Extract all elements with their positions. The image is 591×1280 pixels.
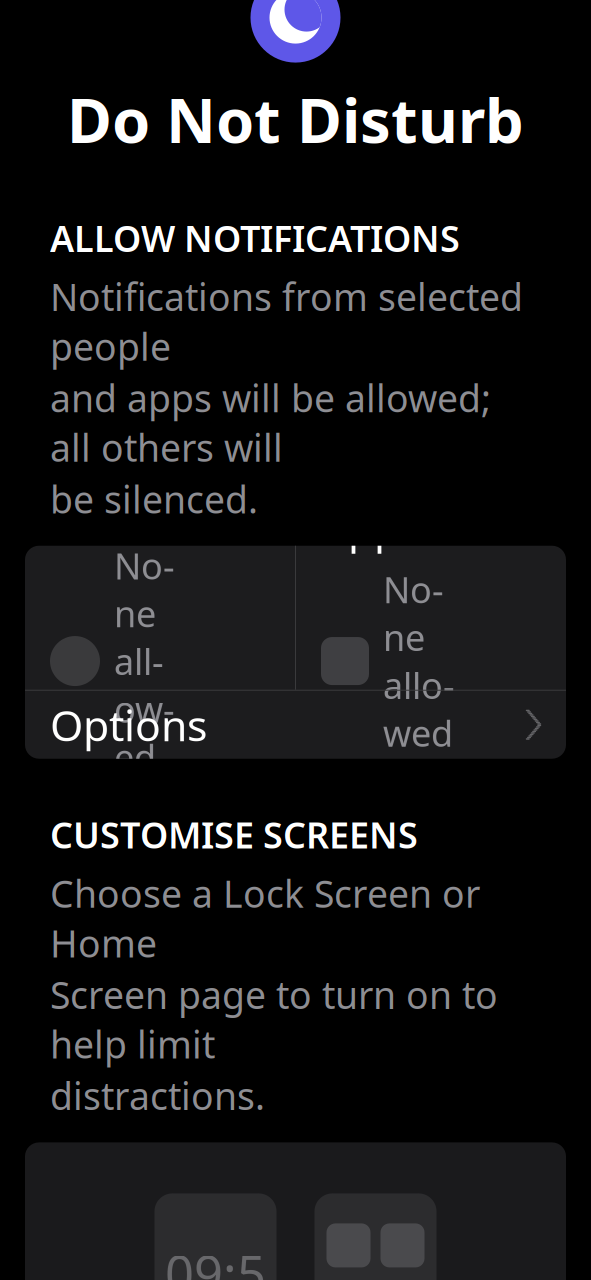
button[interactable]: Apps [296, 546, 566, 690]
staticText: Screen page to turn on to help limit [50, 970, 498, 1069]
staticText: 09:59 [165, 1239, 266, 1280]
staticText: allowed [383, 661, 455, 757]
staticText: Options [50, 696, 207, 753]
button[interactable]: Options [25, 691, 566, 759]
button[interactable]: Choose a Lock Screen or Home Screen page [25, 1142, 566, 1280]
staticText: Notifications from selected people [50, 272, 523, 371]
staticText: CUSTOMISE SCREENS [50, 811, 418, 858]
staticText: be silenced. [50, 474, 258, 524]
staticText: Do Not Disturb [67, 79, 524, 160]
staticText: People [50, 475, 187, 532]
staticText: allowed [114, 637, 175, 781]
button[interactable]: People [25, 546, 295, 690]
staticText: Apps [321, 499, 420, 555]
staticText: None [114, 541, 175, 637]
staticText: Choose a Lock Screen or Home [50, 868, 480, 968]
staticText: None [383, 565, 444, 661]
staticText: ALLOW NOTIFICATIONS [50, 214, 460, 262]
staticText: distractions. [50, 1071, 265, 1120]
staticText: and apps will be allowed; all others wil… [50, 373, 491, 472]
